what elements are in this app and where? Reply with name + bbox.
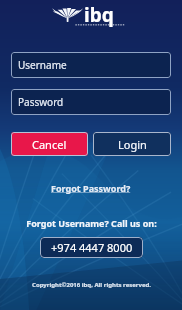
- staticText: Login: [118, 137, 147, 152]
- button[interactable]: Username: [11, 52, 171, 78]
- staticText: +974 4447 8000: [51, 240, 133, 255]
- staticText: ibq: [84, 2, 114, 28]
- button[interactable]: +974 4447 8000: [40, 237, 143, 258]
- button[interactable]: Login: [93, 132, 171, 156]
- staticText: Cancel: [32, 137, 67, 152]
- button[interactable]: Password: [11, 89, 171, 115]
- staticText: Forgot Password?: [51, 182, 131, 194]
- staticText: Username: [18, 58, 67, 72]
- other: ibq logo: [52, 4, 130, 30]
- button[interactable]: Forgot Password?: [45, 180, 137, 196]
- staticText: Forgot Username? Call us on:: [26, 217, 157, 229]
- staticText: Password: [18, 95, 64, 109]
- button[interactable]: Cancel: [11, 132, 88, 156]
- staticText: Copyright©2016 ibq, All rights reserved.: [32, 281, 151, 289]
